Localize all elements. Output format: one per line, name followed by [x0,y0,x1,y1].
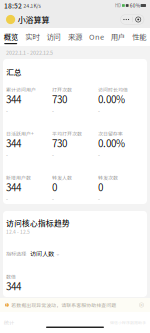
button[interactable]: 访问 [43,33,64,44]
staticText: 访问时长均值 [98,86,128,93]
button[interactable]: 用户 [107,33,128,44]
staticText: 次日留存率 [98,130,123,137]
staticText: - [52,150,54,158]
staticText: 344 [6,136,21,150]
button[interactable]: More [120,15,132,24]
staticText: 344 [6,279,21,293]
staticText: 汇总 [6,66,22,78]
staticText: - [6,150,8,158]
staticText: 60% [130,2,140,9]
button[interactable]: 访问人数 [26,250,64,257]
staticText: 日活跃用户+ [6,130,34,137]
staticText: 访问 [47,31,61,42]
button[interactable]: One [86,33,107,44]
staticText: 新增用户数 [6,174,31,181]
staticText: 730 [52,92,67,106]
staticText: 344 [6,180,21,194]
staticText: - [6,194,8,202]
staticText: 0 [98,180,103,194]
button[interactable]: Dismiss notice [138,301,145,308]
staticText: 微信小程序数据助手 [110,320,146,325]
button[interactable]: 来源 [64,33,86,44]
staticText: 访问核心指标趋势 [6,217,70,229]
staticText: - [98,150,100,158]
staticText: 打开次数 [52,86,72,93]
staticText: 0.00% [98,92,125,106]
staticText: - [98,194,100,202]
staticText: 用户 [111,31,125,42]
button[interactable]: 性能 [129,33,150,44]
staticText: 344 [6,92,21,106]
staticText: 来源 [68,31,82,42]
staticText: 概览 [4,31,18,42]
staticText: 2022.1.1 - 2022.12.5 [6,49,53,56]
staticText: 0 [52,180,57,194]
staticText: - [6,106,8,114]
staticText: 数值 [6,273,16,280]
button[interactable]: 实时 [21,33,43,44]
staticText: 12.4 - 12.5 [6,228,30,235]
staticText: 实时 [25,31,39,42]
staticText: 18:52 [4,1,22,10]
staticText: 730 [52,136,67,150]
staticText: 小浴算算 [18,14,50,25]
staticText: 指标选择 [6,250,26,257]
staticText: - [52,106,54,114]
button[interactable]: Close mini program [132,15,144,24]
staticText: 转发人数 [52,174,72,181]
staticText: One [89,31,104,42]
staticText: 统计 [4,319,14,326]
staticText: 平均打开次数 [52,130,82,137]
staticText: - [98,106,100,114]
staticText: HD [115,2,121,9]
staticText: ⌄ [55,250,60,257]
staticText: 若数据出现异常波动，请联系客服协助排查问题 [11,301,116,308]
staticText: ! [6,302,8,308]
staticText: 累计访问用户 [6,86,36,93]
staticText: 0.00% [98,136,125,150]
staticText: 转发次数 [98,174,118,181]
button[interactable]: 概览 [0,33,21,44]
staticText: ✕ [140,303,143,307]
staticText: 24.1K/s [23,2,40,9]
staticText: - [52,194,54,202]
staticText: 性能 [132,31,146,42]
staticText: 访问人数 [30,249,54,258]
